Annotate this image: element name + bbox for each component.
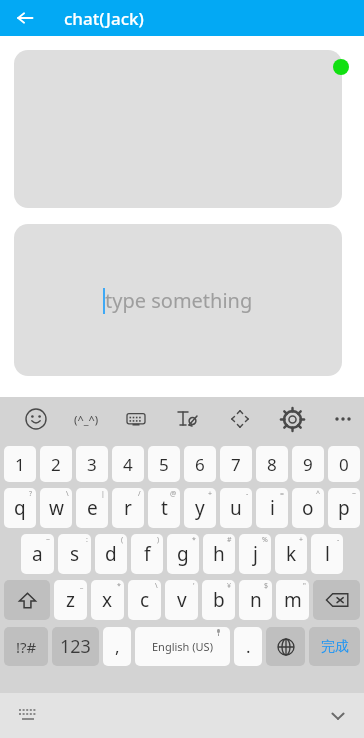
staticText: t bbox=[161, 495, 168, 521]
staticText: 123 bbox=[60, 634, 91, 659]
button[interactable]: Settings bbox=[270, 397, 314, 441]
button[interactable]: Move keyboard bbox=[218, 397, 262, 441]
button[interactable]: 8 bbox=[256, 446, 288, 482]
button[interactable]: * bbox=[167, 534, 199, 574]
button[interactable]: English (US) bbox=[135, 627, 230, 666]
button[interactable]: / bbox=[112, 488, 144, 528]
button[interactable]: 9 bbox=[292, 446, 324, 482]
button[interactable]: + bbox=[184, 488, 216, 528]
button[interactable]: ¥ bbox=[202, 580, 235, 620]
button[interactable]: ) bbox=[131, 534, 163, 574]
button[interactable]: 6 bbox=[184, 446, 216, 482]
staticText: s bbox=[70, 541, 80, 567]
button[interactable]: | bbox=[76, 488, 108, 528]
staticText: w bbox=[49, 495, 64, 521]
button[interactable]: 完成 bbox=[309, 627, 360, 666]
button[interactable]: ^ bbox=[292, 488, 324, 528]
button[interactable]: 4 bbox=[112, 446, 144, 482]
staticText: l bbox=[325, 541, 330, 567]
button[interactable]: $ bbox=[239, 580, 272, 620]
button[interactable]: , bbox=[103, 627, 131, 666]
button[interactable]: 0 bbox=[328, 446, 360, 482]
button[interactable]: - bbox=[220, 488, 252, 528]
button[interactable]: Keyboard layout bbox=[114, 397, 158, 441]
button[interactable]: + bbox=[275, 534, 307, 574]
staticText: ? bbox=[29, 489, 33, 499]
staticText: 4 bbox=[123, 453, 133, 476]
staticText: !?# bbox=[16, 637, 37, 657]
button[interactable]: ? bbox=[4, 488, 36, 528]
button[interactable]: Emoji bbox=[14, 397, 58, 441]
staticText: x bbox=[102, 587, 113, 613]
staticText: o bbox=[302, 495, 314, 521]
staticText: 6 bbox=[195, 453, 205, 476]
button[interactable]: 2 bbox=[40, 446, 72, 482]
button[interactable]: " bbox=[276, 580, 309, 620]
staticText: u bbox=[230, 495, 242, 521]
button[interactable]: 7 bbox=[220, 446, 252, 482]
button[interactable]: \ bbox=[128, 580, 161, 620]
staticText: $ bbox=[264, 581, 269, 591]
button[interactable]: # bbox=[203, 534, 235, 574]
button[interactable]: \ bbox=[40, 488, 72, 528]
staticText: ¥ bbox=[227, 581, 232, 591]
staticText: m bbox=[284, 587, 302, 613]
button[interactable] bbox=[14, 50, 342, 208]
button[interactable]: ' bbox=[165, 580, 198, 620]
staticText: \ bbox=[155, 581, 158, 591]
staticText: _ bbox=[80, 581, 84, 591]
staticText: ~ bbox=[46, 535, 51, 545]
button[interactable]: Back bbox=[8, 1, 42, 35]
staticText: (^_^) bbox=[74, 412, 99, 427]
staticText: n bbox=[250, 587, 262, 613]
staticText: y bbox=[195, 495, 205, 521]
button[interactable]: _ bbox=[54, 580, 87, 620]
staticText: English (US) bbox=[152, 639, 213, 654]
button[interactable]: % bbox=[239, 534, 271, 574]
button[interactable]: Show keyboard bbox=[10, 698, 46, 734]
staticText: 8 bbox=[267, 453, 277, 476]
button[interactable]: 3 bbox=[76, 446, 108, 482]
button[interactable]: 5 bbox=[148, 446, 180, 482]
button[interactable]: ( bbox=[95, 534, 127, 574]
staticText: - bbox=[246, 489, 249, 499]
staticText: % bbox=[262, 535, 268, 545]
staticText: h bbox=[213, 541, 225, 567]
staticText: ~ bbox=[352, 489, 357, 499]
button[interactable]: Kaomoji bbox=[64, 397, 108, 441]
staticText: 2 bbox=[51, 453, 61, 476]
button[interactable]: More bbox=[321, 397, 364, 441]
staticText: 9 bbox=[303, 453, 313, 476]
button[interactable]: 123 bbox=[52, 627, 99, 666]
staticText: * bbox=[117, 581, 121, 591]
staticText: 3 bbox=[87, 453, 97, 476]
staticText: ) bbox=[157, 535, 160, 545]
button[interactable]: !?# bbox=[4, 627, 48, 666]
staticText: g bbox=[177, 541, 189, 567]
button[interactable]: ~ bbox=[21, 534, 54, 574]
staticText: " bbox=[303, 581, 306, 591]
button[interactable]: ~ bbox=[328, 488, 360, 528]
button[interactable]: Backspace bbox=[313, 580, 360, 620]
button[interactable]: 1 bbox=[4, 446, 36, 482]
button[interactable]: Hide keyboard bbox=[320, 698, 356, 734]
staticText: | bbox=[101, 489, 105, 499]
button[interactable]: @ bbox=[148, 488, 180, 528]
button[interactable]: = bbox=[256, 488, 288, 528]
button[interactable]: Handwriting bbox=[165, 397, 209, 441]
staticText: , bbox=[115, 635, 120, 658]
button[interactable]: : bbox=[58, 534, 91, 574]
staticText: \ bbox=[66, 489, 69, 499]
staticText: b bbox=[213, 587, 225, 613]
staticText: 1 bbox=[15, 453, 25, 476]
staticText: - bbox=[337, 535, 340, 545]
button[interactable]: . bbox=[234, 627, 262, 666]
button[interactable]: - bbox=[311, 534, 343, 574]
staticText: ( bbox=[121, 535, 124, 545]
button[interactable]: Shift bbox=[4, 580, 50, 620]
button[interactable]: * bbox=[91, 580, 124, 620]
staticText: @ bbox=[170, 489, 177, 499]
button[interactable]: type something bbox=[14, 224, 342, 376]
staticText: . bbox=[246, 635, 251, 658]
button[interactable]: Change language bbox=[266, 627, 305, 666]
